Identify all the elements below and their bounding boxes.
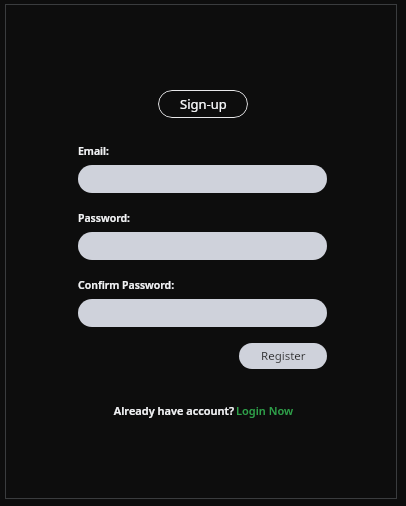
button[interactable]: Register: [239, 343, 327, 369]
button[interactable]: [78, 299, 327, 327]
button[interactable]: Sign-up: [158, 90, 248, 118]
button[interactable]: [78, 165, 327, 193]
staticText: Confirm Password:: [78, 278, 175, 292]
staticText: Email:: [78, 144, 109, 158]
staticText: Register: [261, 348, 306, 364]
staticText: Login Now: [236, 403, 294, 418]
button[interactable]: [78, 232, 327, 260]
staticText: Already have account?: [112, 403, 236, 418]
staticText: Password:: [78, 211, 130, 225]
button[interactable]: Login Now: [236, 403, 294, 418]
staticText: Sign-up: [180, 95, 227, 113]
